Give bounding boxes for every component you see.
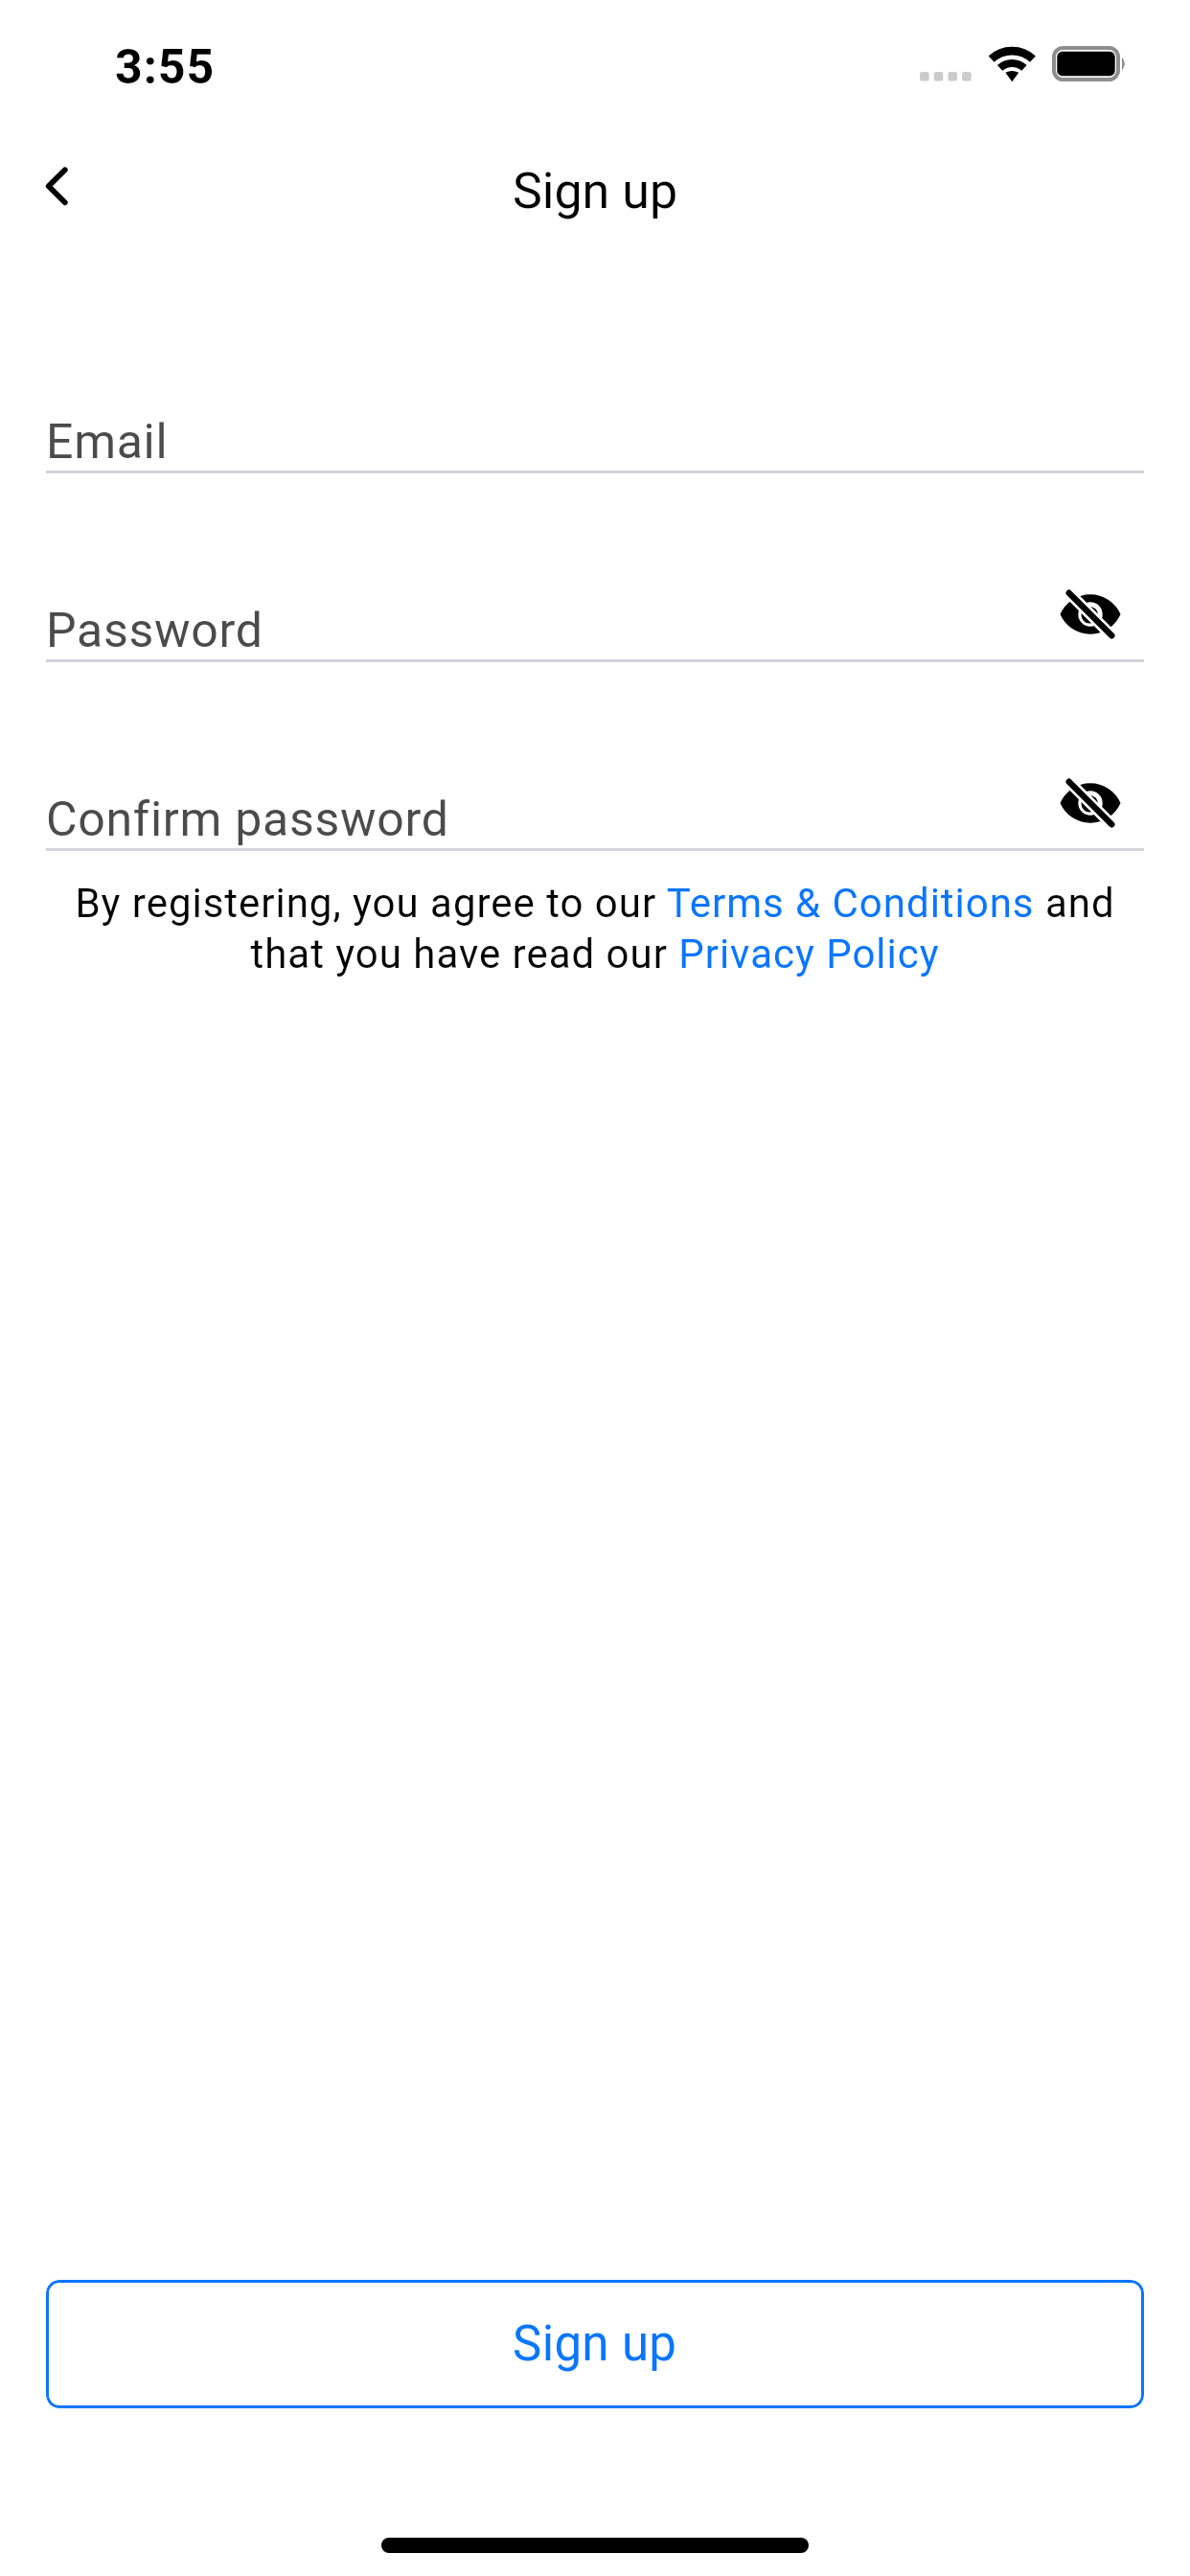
staticText: Sign up — [513, 2315, 677, 2373]
staticText: By registering, you agree to our Terms &… — [46, 880, 1144, 977]
button[interactable]: Show password — [1047, 760, 1133, 846]
button[interactable]: Show password — [1047, 571, 1133, 657]
staticText: 3:55 — [115, 39, 216, 96]
staticText: Sign up — [0, 162, 1190, 220]
button[interactable]: Terms & Conditions — [665, 878, 1035, 930]
staticText: Email — [46, 414, 169, 471]
staticText: Password — [46, 603, 263, 659]
button[interactable]: Back — [13, 147, 98, 231]
staticText: Confirm password — [46, 792, 449, 848]
button[interactable]: Privacy Policy — [679, 929, 941, 980]
button[interactable]: Sign up — [46, 2280, 1144, 2408]
